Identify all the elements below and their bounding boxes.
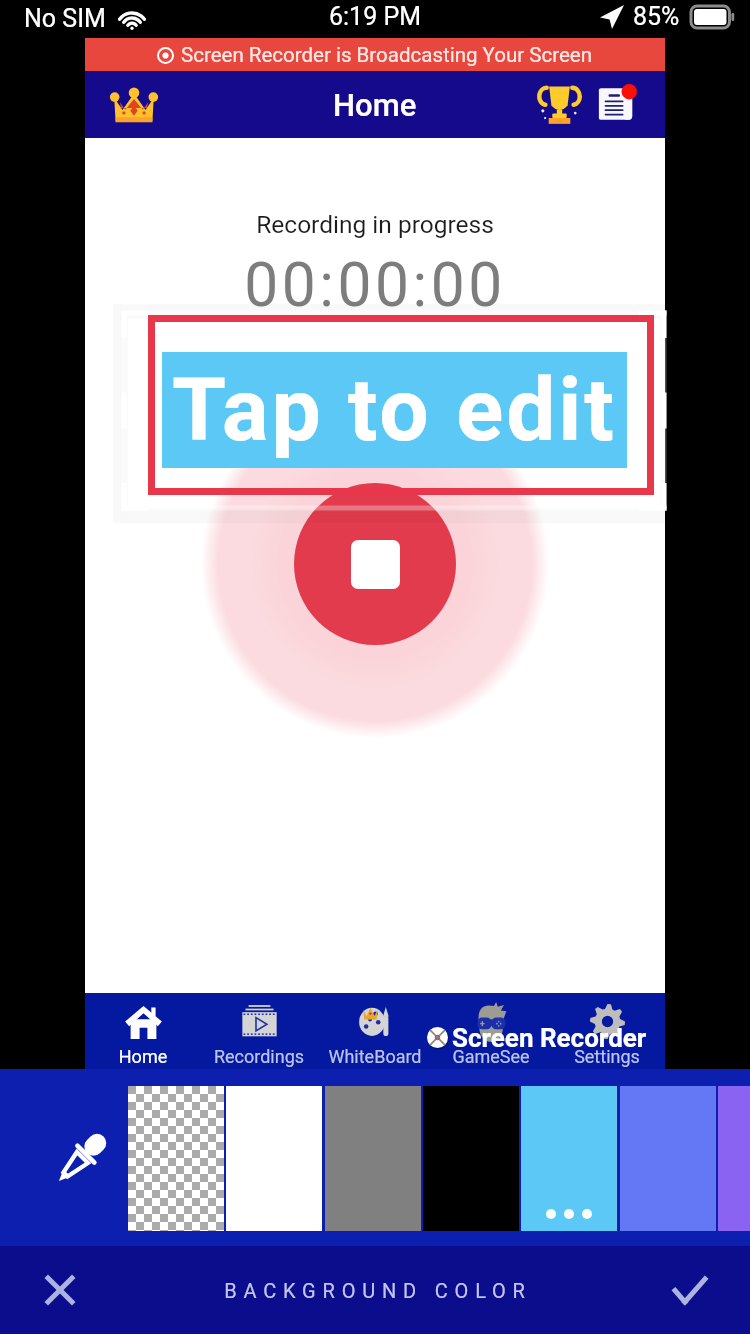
staticText: Settings [549,1046,665,1067]
button[interactable]: Recordings [201,993,317,1069]
staticText: BACKGROUND COLOR [224,1279,532,1302]
staticText: Home [85,1046,201,1067]
button[interactable]: Stop recording [294,483,456,645]
staticText: No SIM [24,4,106,33]
staticText: WhiteBoard [317,1046,433,1067]
button[interactable]: Settings [549,993,665,1069]
staticText: 85% [633,2,680,31]
staticText: Home [333,87,417,123]
button[interactable]: Premium [103,74,165,136]
button[interactable]: WhiteBoard [317,993,433,1069]
button[interactable]: Confirm [654,1254,726,1326]
staticText: 00:00:00 [85,250,665,321]
button[interactable]: Home [85,993,201,1069]
staticText: Tap to edit [172,359,617,462]
staticText: Recording in progress [85,210,665,239]
button[interactable]: Pick colour [45,1122,117,1194]
staticText: GameSee [433,1046,549,1067]
staticText: Recordings [201,1046,317,1067]
staticText: 6:19 PM [329,2,422,31]
button[interactable]: Cancel [24,1254,96,1326]
button[interactable]: News [590,74,650,134]
button[interactable] [521,1086,617,1231]
button[interactable]: Tap to edit [162,352,627,468]
staticText: Screen Recorder is Broadcasting Your Scr… [181,43,593,67]
button[interactable]: Achievements [529,74,589,134]
button[interactable] [128,1086,224,1231]
button[interactable]: GameSee [433,993,549,1069]
staticText: Screen Recorder [452,1023,647,1053]
button[interactable]: Screen Recorder overlay [424,1022,648,1054]
